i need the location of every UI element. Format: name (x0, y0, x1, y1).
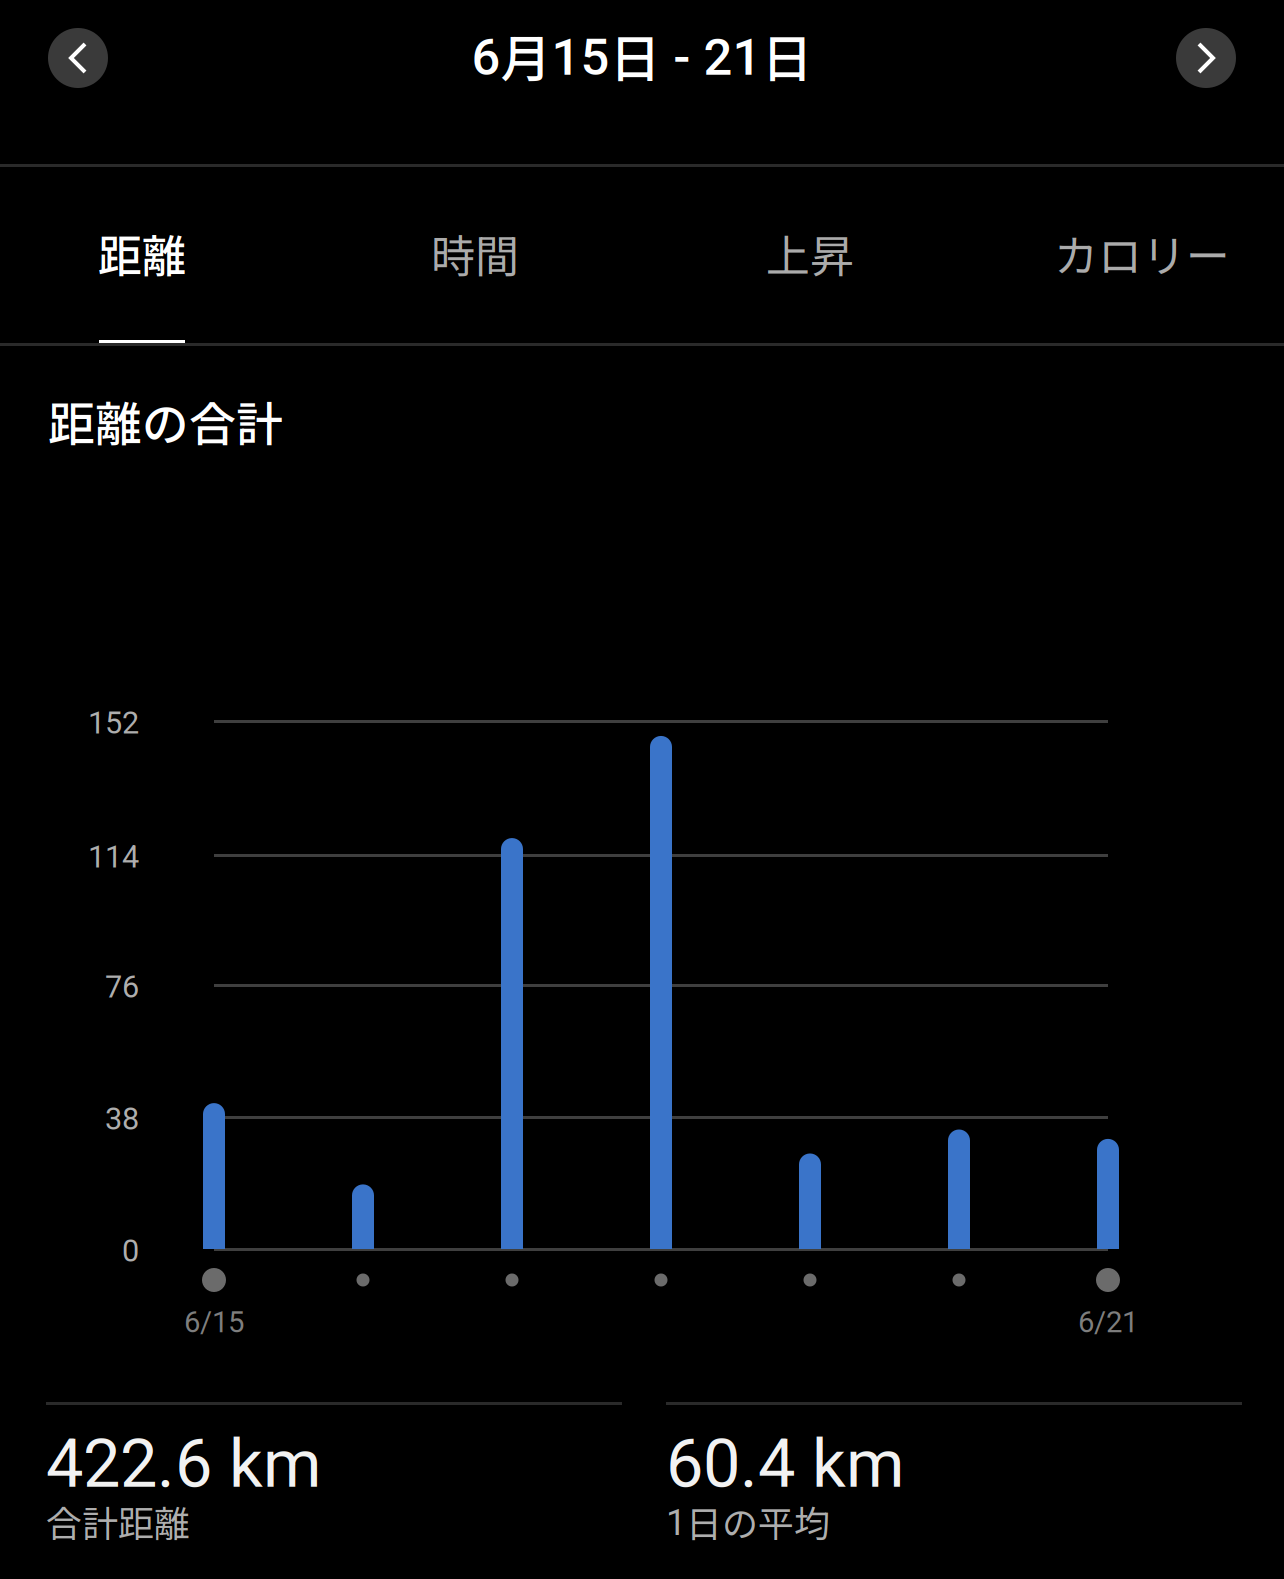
button[interactable]: Previous week (48, 28, 108, 88)
button[interactable]: 上昇 (766, 166, 854, 344)
button[interactable]: カロリー (1054, 166, 1230, 344)
staticText: 0 (122, 1233, 139, 1269)
staticText: 合計距離 (46, 1495, 190, 1547)
staticText: 76 (105, 969, 139, 1005)
staticText: 114 (88, 839, 139, 875)
staticText: 152 (88, 705, 139, 741)
staticText: 38 (105, 1101, 139, 1137)
staticText: 6/15 (184, 1305, 244, 1339)
staticText: 60.4 km (666, 1425, 904, 1503)
button[interactable]: 時間 (431, 166, 519, 344)
staticText: カロリー (1054, 221, 1230, 285)
staticText: 422.6 km (46, 1425, 321, 1503)
staticText: 距離 (98, 221, 186, 285)
button[interactable]: Next week (1176, 28, 1236, 88)
staticText: 6/21 (1078, 1305, 1138, 1339)
button[interactable]: 距離 (98, 166, 186, 344)
staticText: 時間 (431, 221, 519, 285)
staticText: 上昇 (766, 221, 854, 285)
staticText: 6月15日 - 21日 (471, 18, 812, 92)
staticText: 1日の平均 (666, 1495, 830, 1547)
staticText: 距離の合計 (48, 387, 283, 455)
